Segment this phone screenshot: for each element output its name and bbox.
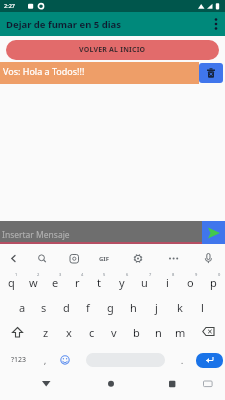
button[interactable]: z [34, 320, 57, 345]
staticText: VOLVER AL INICIO [79, 45, 146, 55]
button[interactable]: t [88, 270, 110, 295]
button[interactable]: , [38, 347, 52, 373]
button[interactable] [196, 353, 223, 368]
staticText: GIF [99, 255, 109, 263]
staticText: t [97, 275, 101, 290]
staticText: u [141, 275, 148, 290]
button[interactable]: r [66, 270, 88, 295]
staticText: , [44, 355, 47, 366]
button[interactable] [202, 221, 225, 244]
button[interactable]: w [22, 270, 44, 295]
staticText: 2 [37, 272, 40, 277]
staticText: 4 [81, 272, 84, 277]
staticText: 6 [126, 272, 129, 277]
staticText: i [166, 275, 169, 290]
staticText: ?123 [11, 355, 27, 365]
button[interactable] [0, 320, 34, 345]
staticText: y [119, 275, 125, 290]
staticText: n [155, 325, 162, 340]
button[interactable]: x [57, 320, 80, 345]
button[interactable]: . [169, 347, 195, 373]
button[interactable]: q [0, 270, 22, 295]
staticText: Dejar de fumar en 5 dias [6, 18, 122, 31]
staticText: Insertar Mensaje [2, 229, 70, 241]
staticText: e [52, 275, 59, 290]
button[interactable]: VOLVER AL INICIO [6, 40, 219, 60]
staticText: m [175, 325, 186, 340]
staticText: j [155, 300, 158, 315]
button[interactable]: p [202, 270, 225, 295]
staticText: w [29, 275, 38, 290]
staticText: x [66, 325, 72, 340]
button[interactable]: GIF [0, 244, 225, 270]
staticText: d [63, 300, 70, 315]
staticText: p [210, 275, 217, 290]
button[interactable]: o [179, 270, 202, 295]
button[interactable] [150, 373, 225, 400]
button[interactable] [52, 347, 78, 373]
button[interactable]: d [55, 295, 77, 320]
button[interactable]: i [156, 270, 179, 295]
button[interactable]: j [145, 295, 168, 320]
button[interactable]: y [110, 270, 133, 295]
button[interactable]: g [99, 295, 122, 320]
button[interactable]: Insertar Mensaje [0, 221, 202, 244]
button[interactable]: f [77, 295, 99, 320]
button[interactable] [201, 12, 225, 36]
staticText: g [107, 300, 114, 315]
button[interactable]: a [11, 295, 33, 320]
staticText: f [86, 300, 90, 315]
button[interactable]: l [191, 295, 214, 320]
button[interactable]: m [169, 320, 191, 345]
staticText: l [201, 300, 204, 315]
staticText: o [187, 275, 194, 290]
button[interactable]: v [103, 320, 125, 345]
staticText: v [111, 325, 117, 340]
staticText: 3 [59, 272, 62, 277]
button[interactable]: e [44, 270, 66, 295]
button[interactable]: c [80, 320, 103, 345]
staticText: 5 [103, 272, 106, 277]
button[interactable]: s [33, 295, 55, 320]
staticText: z [43, 325, 49, 340]
button[interactable]: k [168, 295, 191, 320]
staticText: 1 [15, 272, 18, 277]
staticText: h [130, 300, 137, 315]
button[interactable]: h [122, 295, 145, 320]
staticText: Vos: Hola a Todos!!! [3, 65, 85, 77]
button[interactable] [75, 373, 150, 400]
staticText: 0 [218, 272, 221, 277]
button[interactable] [0, 373, 75, 400]
staticText: s [41, 300, 47, 315]
button[interactable] [199, 63, 223, 83]
button[interactable]: n [147, 320, 169, 345]
staticText: b [133, 325, 140, 340]
button[interactable]: u [133, 270, 156, 295]
button[interactable]: ?123 [0, 347, 38, 373]
staticText: q [8, 275, 15, 290]
staticText: . [181, 355, 184, 366]
staticText: r [75, 275, 80, 290]
staticText: k [177, 300, 183, 315]
staticText: 9 [195, 272, 198, 277]
staticText: 8 [172, 272, 175, 277]
button[interactable] [86, 353, 165, 367]
button[interactable] [191, 320, 225, 345]
staticText: 7 [149, 272, 152, 277]
staticText: a [19, 300, 26, 315]
button[interactable]: b [125, 320, 147, 345]
staticText: 2:27 [4, 2, 15, 9]
staticText: c [89, 325, 95, 340]
